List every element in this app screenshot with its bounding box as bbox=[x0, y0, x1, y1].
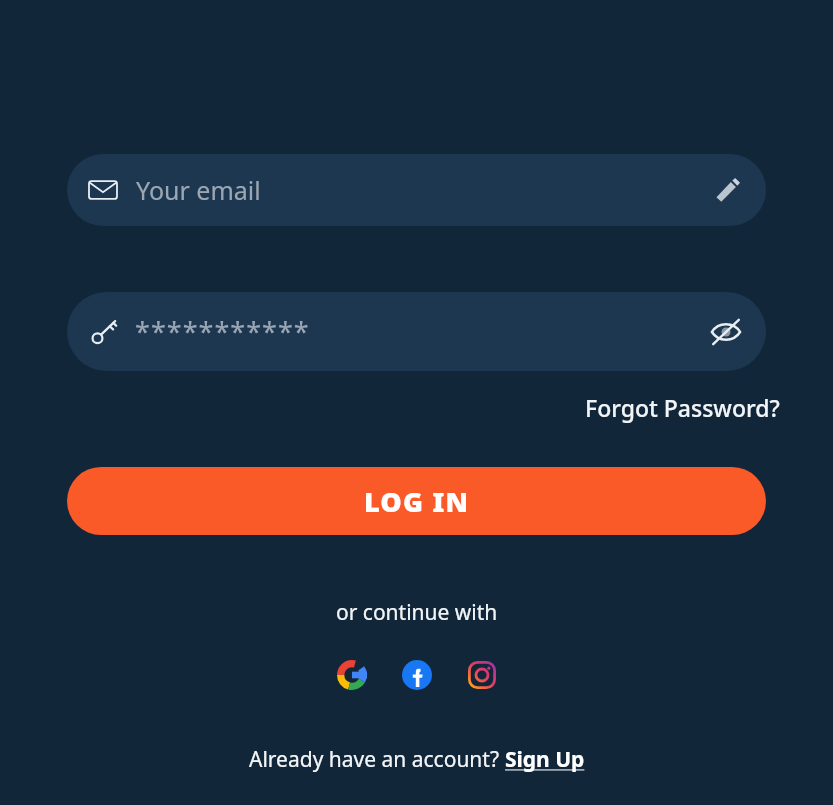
staticText: Sign Up bbox=[505, 745, 585, 774]
button[interactable]: Continue with Facebook bbox=[397, 655, 437, 695]
button[interactable]: Edit email bbox=[708, 170, 748, 210]
staticText: LOG IN bbox=[364, 483, 470, 520]
button[interactable]: Continue with Instagram bbox=[462, 655, 502, 695]
staticText: Already have an account? bbox=[249, 745, 505, 774]
staticText: Your email bbox=[136, 173, 261, 207]
button[interactable]: Sign Up bbox=[505, 745, 585, 774]
button[interactable]: Your email bbox=[67, 154, 766, 226]
button[interactable]: Forgot Password? bbox=[585, 392, 780, 423]
staticText: *********** bbox=[135, 313, 310, 350]
button[interactable]: Continue with Google bbox=[332, 655, 372, 695]
button[interactable]: Show password bbox=[704, 310, 748, 354]
button[interactable]: LOG IN bbox=[67, 467, 766, 535]
staticText: Forgot Password? bbox=[585, 392, 780, 423]
staticText: or continue with bbox=[336, 598, 498, 627]
button[interactable]: *********** bbox=[67, 292, 766, 371]
